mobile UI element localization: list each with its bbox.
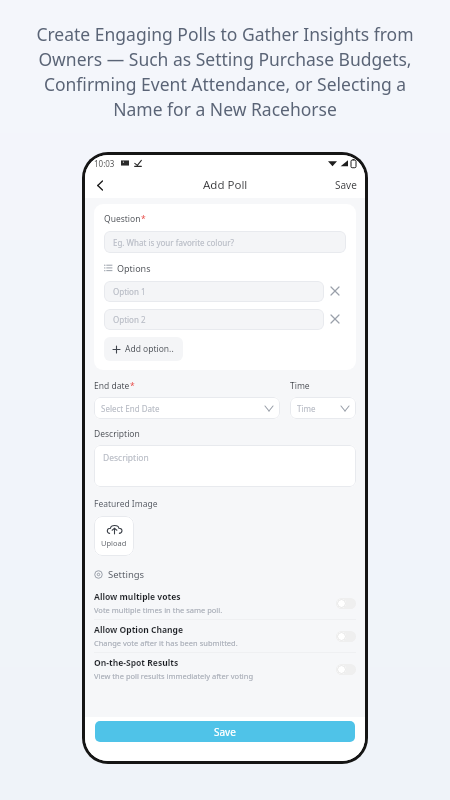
button[interactable]: Remove Option 1 xyxy=(324,280,346,302)
staticText: Featured Image xyxy=(94,498,158,510)
staticText: Eg. What is your favorite colour? xyxy=(113,237,234,248)
staticText: Save xyxy=(214,725,236,739)
staticText: * xyxy=(130,380,135,392)
staticText: Description xyxy=(94,428,140,440)
staticText: 10:03 xyxy=(94,158,115,169)
staticText: Add option.. xyxy=(125,343,174,355)
button[interactable]: Save xyxy=(95,721,355,742)
staticText: Options xyxy=(117,262,151,274)
staticText: Create Engaging Polls to Gather Insights… xyxy=(18,22,432,121)
staticText: On-the-Spot Results xyxy=(94,657,179,669)
staticText: Time xyxy=(290,380,310,392)
button[interactable]: Option 2 xyxy=(104,309,324,330)
staticText: Option 2 xyxy=(113,314,146,325)
button[interactable]: Time xyxy=(290,397,356,419)
staticText: Settings xyxy=(108,568,145,581)
staticText: Select End Date xyxy=(101,403,265,414)
staticText: End date xyxy=(94,380,130,392)
staticText: Question xyxy=(104,213,141,225)
button[interactable]: Save xyxy=(327,174,365,196)
staticText: Upload xyxy=(101,538,127,548)
staticText: View the poll results immediately after … xyxy=(94,671,254,681)
button[interactable]: Select End Date xyxy=(94,397,280,419)
staticText: Time xyxy=(297,403,341,414)
button[interactable]: Allow Option Change xyxy=(94,620,356,653)
button[interactable]: Option 1 xyxy=(104,281,324,302)
staticText: Save xyxy=(335,178,357,192)
button[interactable]: Back xyxy=(89,174,111,196)
button[interactable]: Remove Option 2 xyxy=(324,308,346,330)
staticText: Vote multiple times in the same poll. xyxy=(94,605,223,615)
button[interactable]: Add option.. xyxy=(104,337,183,361)
staticText: * xyxy=(141,213,146,225)
button[interactable]: Description xyxy=(94,445,356,487)
staticText: Allow Option Change xyxy=(94,624,183,636)
staticText: Description xyxy=(103,452,149,464)
staticText: Change vote after it has been submitted. xyxy=(94,638,238,648)
staticText: Option 1 xyxy=(113,286,146,297)
staticText: Allow multiple votes xyxy=(94,591,181,603)
button[interactable]: On-the-Spot Results xyxy=(94,653,356,685)
button[interactable]: Upload image xyxy=(94,516,134,556)
button[interactable]: Allow multiple votes xyxy=(94,587,356,620)
button[interactable]: Eg. What is your favorite colour? xyxy=(104,231,346,253)
staticText: Add Poll xyxy=(203,177,248,193)
